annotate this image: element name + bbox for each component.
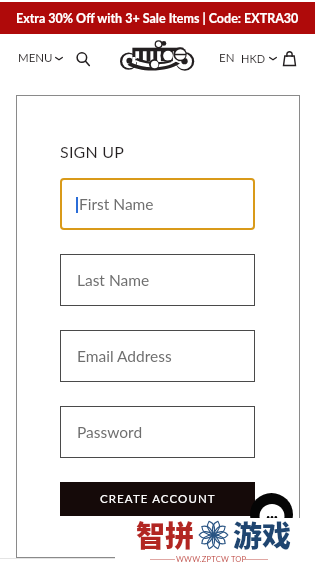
button[interactable]: EN (219, 51, 235, 65)
button[interactable]: Cart (279, 48, 300, 69)
staticText: 智拼 (136, 513, 195, 555)
button[interactable]: Chat (250, 493, 293, 536)
staticText: EN (219, 51, 235, 65)
button[interactable]: Extra 30% Off with 3+ Sale Items | Code:… (0, 2, 315, 34)
button[interactable]: Search (72, 48, 93, 69)
button[interactable]: First Name (60, 178, 255, 230)
staticText: Last Name (77, 271, 150, 290)
button[interactable]: MENU (18, 51, 63, 65)
staticText: SIGN UP (60, 142, 124, 161)
staticText: Password (77, 423, 143, 442)
button[interactable]: Juice home (120, 41, 195, 73)
staticText: Extra 30% Off with 3+ Sale Items | Code:… (16, 11, 299, 26)
button[interactable]: HKD (241, 52, 277, 65)
staticText: MENU (18, 51, 53, 65)
button[interactable]: Password (60, 406, 255, 458)
button[interactable]: Last Name (60, 254, 255, 306)
staticText: WWW.ZPTCW TOP (176, 554, 247, 563)
staticText: Email Address (77, 347, 172, 366)
staticText: 游戏 (233, 513, 292, 555)
staticText: CREATE ACCOUNT (100, 492, 216, 506)
staticText: HKD (241, 52, 266, 65)
button[interactable]: CREATE ACCOUNT (60, 482, 255, 516)
staticText: First Name (79, 195, 154, 214)
button[interactable]: Email Address (60, 330, 255, 382)
